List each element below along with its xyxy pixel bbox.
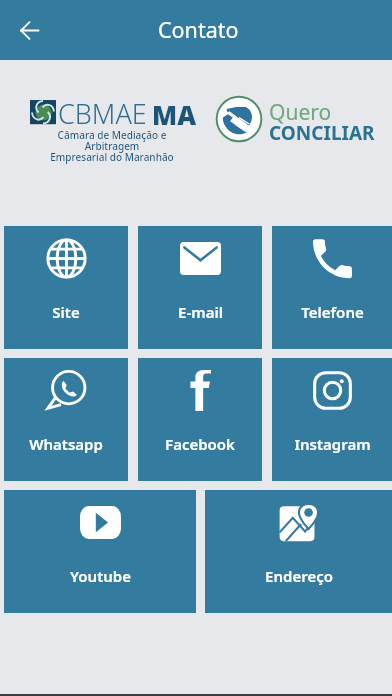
button[interactable]: Instagram (272, 358, 392, 481)
staticText: E-mail (178, 302, 223, 322)
button[interactable]: Back (11, 12, 48, 49)
staticText: Endereço (265, 566, 333, 586)
staticText: MA (152, 97, 197, 132)
button[interactable]: Whatsapp (4, 358, 128, 481)
button[interactable]: Site (4, 226, 128, 349)
staticText: Contato (158, 15, 239, 44)
button[interactable]: Youtube (4, 490, 196, 613)
button[interactable]: E-mail (138, 226, 262, 349)
staticText: Telefone (301, 302, 364, 322)
button[interactable]: Telefone (272, 226, 392, 349)
staticText: Youtube (70, 566, 131, 586)
button[interactable]: Facebook (138, 358, 262, 481)
staticText: Whatsapp (29, 434, 103, 454)
staticText: Facebook (165, 434, 235, 454)
staticText: Quero (269, 98, 332, 127)
staticText: CBMAE (58, 95, 147, 132)
staticText: Site (52, 302, 80, 322)
button[interactable]: Endereço (205, 490, 392, 613)
staticText: Instagram (294, 434, 371, 454)
staticText: CONCILIAR (269, 120, 375, 146)
staticText: Câmara de Mediação e Arbitragem Empresar… (30, 128, 194, 164)
